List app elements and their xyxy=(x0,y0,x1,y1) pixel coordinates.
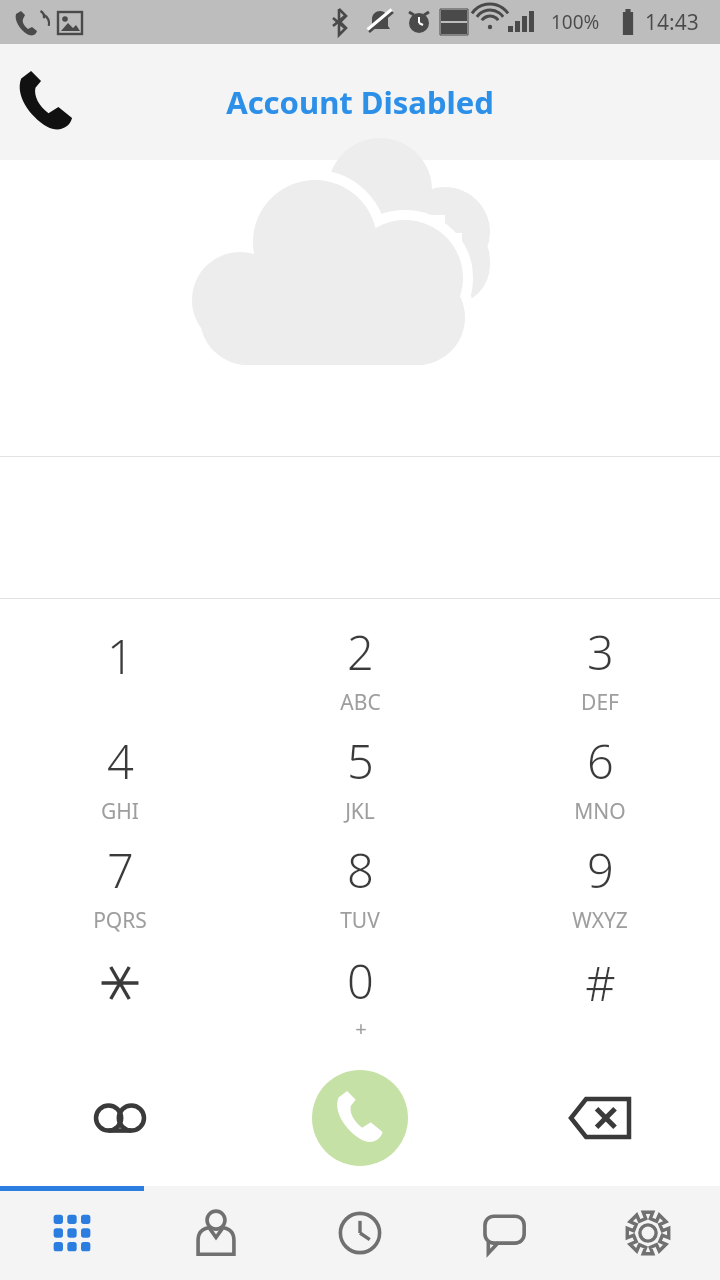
staticText: 3 xyxy=(587,620,614,684)
button[interactable]: Recents xyxy=(288,1186,432,1280)
staticText: WXYZ xyxy=(572,906,628,935)
staticText: 4 xyxy=(107,729,134,793)
button[interactable]: Call xyxy=(240,1050,480,1186)
button[interactable]: 4 xyxy=(0,723,240,832)
button[interactable]: Backspace xyxy=(480,1050,720,1186)
button[interactable]: Messages xyxy=(432,1186,576,1280)
button[interactable]: 8 xyxy=(240,832,480,941)
button[interactable]: 7 xyxy=(0,832,240,941)
staticText: GHI xyxy=(101,797,139,826)
staticText: 2 xyxy=(347,620,374,684)
button[interactable]: Settings xyxy=(576,1186,720,1280)
staticText: Account Disabled xyxy=(226,81,494,123)
button[interactable]: Call xyxy=(0,56,92,148)
staticText: # xyxy=(585,951,616,1015)
staticText: 9 xyxy=(587,838,614,902)
staticText: 5 xyxy=(347,729,374,793)
button[interactable]: 5 xyxy=(240,723,480,832)
staticText: + xyxy=(355,1015,367,1042)
staticText: 8 xyxy=(347,838,374,902)
staticText: MNO xyxy=(574,797,626,826)
button[interactable]: Contacts xyxy=(144,1186,288,1280)
button[interactable]: Voicemail xyxy=(0,1050,240,1186)
staticText: JKL xyxy=(345,797,375,826)
button[interactable]: Dialpad xyxy=(0,1186,144,1280)
button[interactable]: 6 xyxy=(480,723,720,832)
staticText: 100% xyxy=(551,9,600,35)
button[interactable]: 9 xyxy=(480,832,720,941)
button[interactable]: 1 xyxy=(0,613,240,723)
staticText: 0 xyxy=(347,949,374,1013)
button[interactable]: # xyxy=(480,941,720,1050)
staticText: PQRS xyxy=(93,906,147,935)
staticText: 1 xyxy=(107,624,134,688)
button[interactable] xyxy=(0,941,240,1050)
staticText: 7 xyxy=(107,838,134,902)
button[interactable]: 0 xyxy=(240,941,480,1050)
button[interactable]: 2 xyxy=(240,613,480,723)
staticText: 6 xyxy=(587,729,614,793)
staticText: 14:43 xyxy=(645,8,699,37)
staticText: ABC xyxy=(340,688,381,717)
button[interactable]: 3 xyxy=(480,613,720,723)
staticText: DEF xyxy=(581,688,619,717)
staticText: TUV xyxy=(340,906,380,935)
